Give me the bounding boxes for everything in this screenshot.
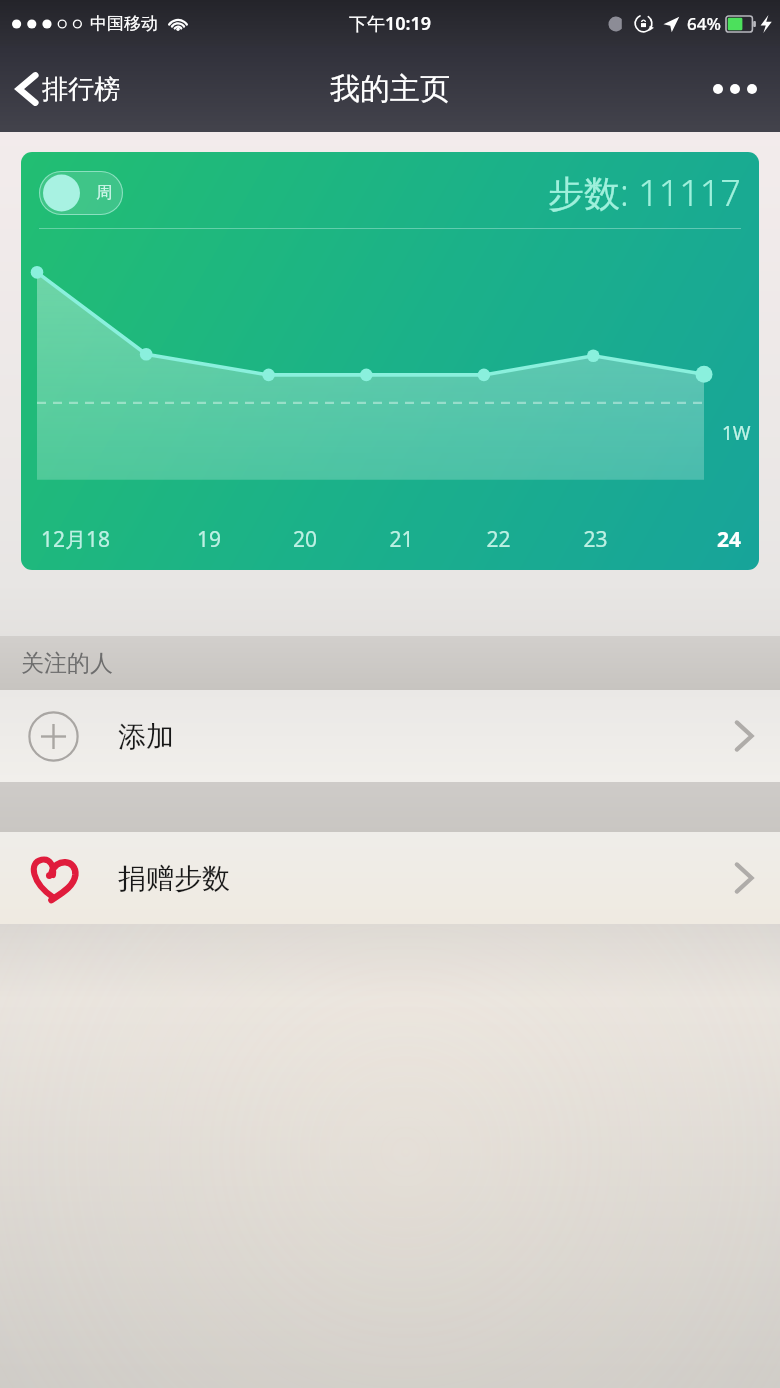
staticText: 24 (644, 525, 741, 554)
staticText: 23 (547, 525, 644, 554)
button[interactable]: 排行榜 (0, 61, 136, 117)
staticText: 22 (450, 525, 547, 554)
button[interactable]: 捐赠步数 (0, 832, 780, 924)
button[interactable]: More options (690, 62, 780, 116)
staticText: 周 (96, 183, 112, 203)
staticText: 关注的人 (21, 649, 113, 678)
staticText: 64% (687, 12, 721, 35)
staticText: 添加 (118, 719, 174, 754)
staticText: 1W (722, 420, 751, 446)
staticText: 19 (161, 525, 257, 554)
staticText: 中国移动 (90, 13, 158, 34)
button[interactable]: 添加 (0, 690, 780, 782)
staticText: 21 (353, 525, 450, 554)
staticText: 步数: 11117 (548, 168, 741, 217)
button[interactable]: 周 (39, 171, 123, 215)
staticText: 排行榜 (42, 73, 120, 106)
staticText: 捐赠步数 (118, 861, 230, 896)
staticText: 下午10:19 (349, 11, 432, 36)
button[interactable]: 周 (21, 152, 759, 570)
staticText: 我的主页 (330, 70, 450, 108)
staticText: 20 (257, 525, 353, 554)
staticText: 12月18 (41, 525, 161, 554)
